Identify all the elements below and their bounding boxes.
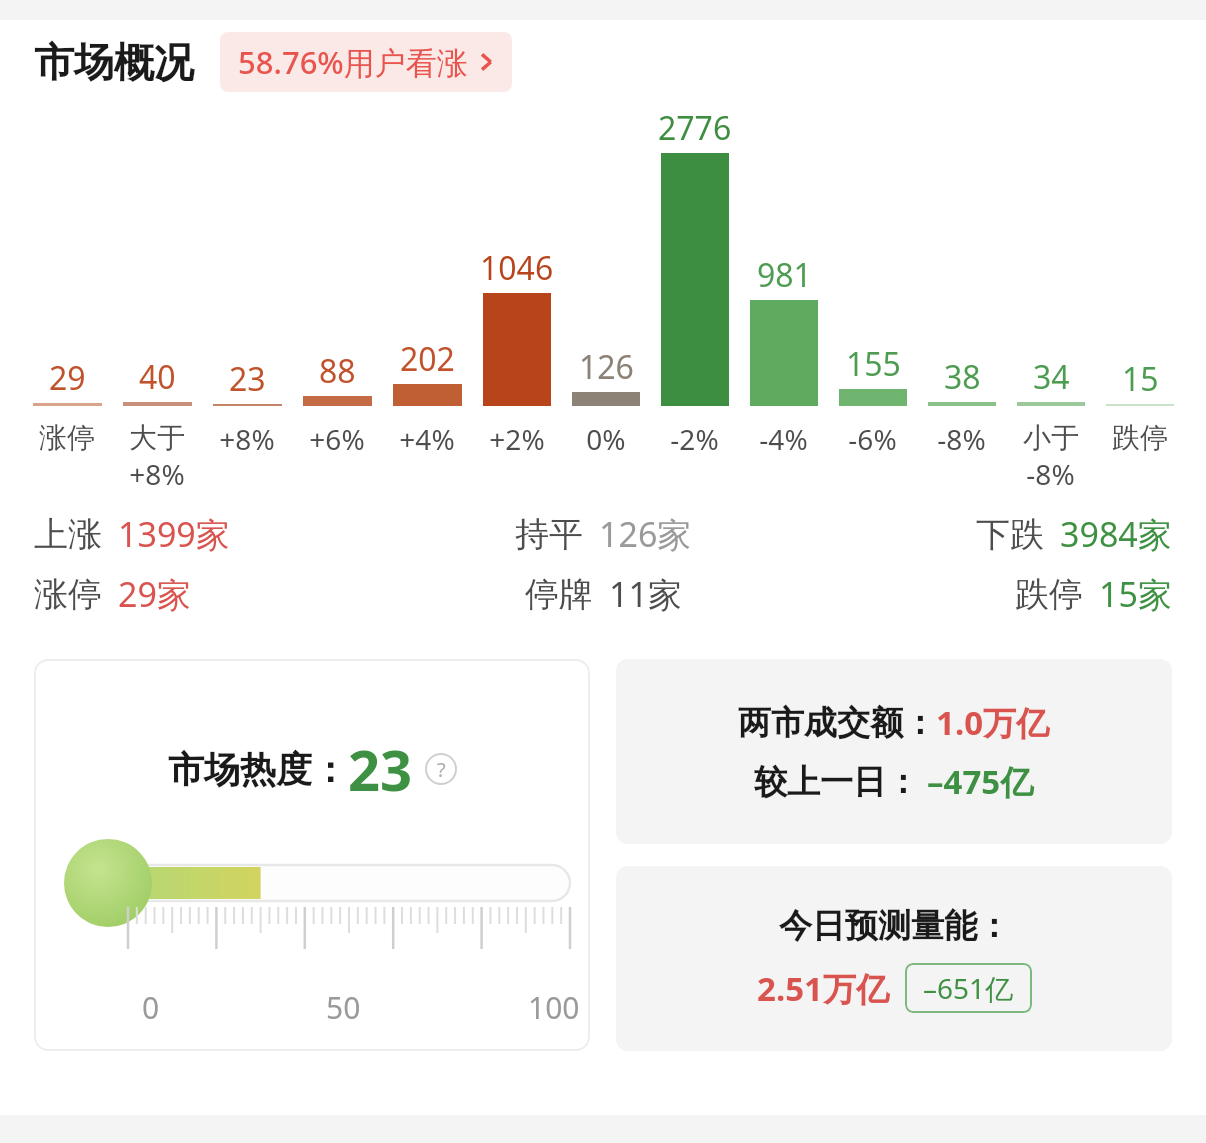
button[interactable]: 40 [114,106,200,493]
staticText: 上涨 [34,513,102,556]
button[interactable]: 23 [204,106,290,458]
button[interactable]: 202 [384,106,470,458]
staticText: -4% [759,420,808,458]
staticText: +2% [489,420,545,458]
staticText: 126家 [599,511,692,557]
staticText: 持平 [515,513,583,556]
staticText: 小于 [1023,420,1079,455]
staticText: 市场热度： [168,747,348,792]
staticText: 跌停 [1015,573,1083,616]
staticText: -6% [848,420,897,458]
staticText: 跌停 [1112,420,1168,455]
button[interactable]: 上涨 [34,511,414,557]
staticText: 29 [49,356,86,400]
staticText: -8% [937,420,986,458]
staticText: 停牌 [525,573,593,616]
button[interactable]: 29 [24,106,110,455]
staticText: -2% [670,420,719,458]
button[interactable]: 今日预测量能： [616,866,1172,1051]
button[interactable]: 58.76%用户看涨 [220,32,512,92]
staticText: 981 [757,253,812,297]
staticText: +4% [399,420,455,458]
button[interactable]: 市场热度： [34,659,590,1051]
staticText: 126 [579,345,634,389]
staticText: 58.76%用户看涨 [238,41,468,83]
staticText: 市场概况 [34,37,194,87]
button[interactable]: 155 [830,106,915,458]
staticText: 3984家 [1060,511,1172,557]
staticText: 0% [586,420,626,458]
button[interactable]: 1046 [474,106,559,458]
staticText: 29家 [118,571,191,617]
staticText: 2.51万亿 [757,966,889,1011]
button[interactable]: 下跌 [793,511,1172,557]
button[interactable]: 126 [563,106,648,458]
button[interactable]: 涨停 [34,571,414,617]
staticText: 88 [319,349,356,393]
button[interactable]: Help about market heat [425,753,457,785]
staticText: 40 [139,355,176,399]
staticText: 今日预测量能： [779,905,1010,947]
staticText: 1046 [480,246,554,290]
button[interactable]: 34 [1008,106,1093,493]
staticText: +8% [129,455,185,493]
staticText: 涨停 [39,420,95,455]
staticText: 下跌 [976,513,1044,556]
button[interactable]: 2776 [652,106,737,458]
staticText: 155 [846,342,901,386]
staticText: 38 [944,355,981,399]
button[interactable]: 88 [294,106,380,458]
button[interactable]: 15 [1097,106,1182,455]
staticText: –651亿 [923,969,1014,1007]
button[interactable]: 两市成交额： [616,659,1172,844]
staticText: 50 [326,987,361,1028]
staticText: +6% [309,420,365,458]
staticText: 23 [348,731,413,807]
staticText: 0 [142,987,160,1028]
staticText: 涨停 [34,573,102,616]
staticText: 34 [1033,355,1070,399]
staticText: 23 [229,357,266,401]
staticText: 较上一日： [754,761,919,803]
button[interactable]: 持平 [414,511,793,557]
button[interactable]: 停牌 [414,571,793,617]
staticText: 两市成交额： [738,702,936,744]
staticText: -8% [1026,455,1075,493]
staticText: 11家 [609,571,682,617]
staticText: 1.0万亿 [936,700,1050,745]
button[interactable]: 981 [741,106,826,458]
staticText: 100 [528,987,580,1028]
staticText: 1399家 [118,511,230,557]
staticText: ? [437,756,446,783]
staticText: 2776 [658,106,732,150]
staticText: 大于 [129,420,185,455]
staticText: –475亿 [927,759,1034,804]
button[interactable]: 跌停 [793,571,1172,617]
staticText: 15家 [1099,571,1172,617]
staticText: +8% [219,420,275,458]
staticText: 15 [1122,357,1159,401]
staticText: 202 [400,337,455,381]
button[interactable]: 38 [919,106,1004,458]
